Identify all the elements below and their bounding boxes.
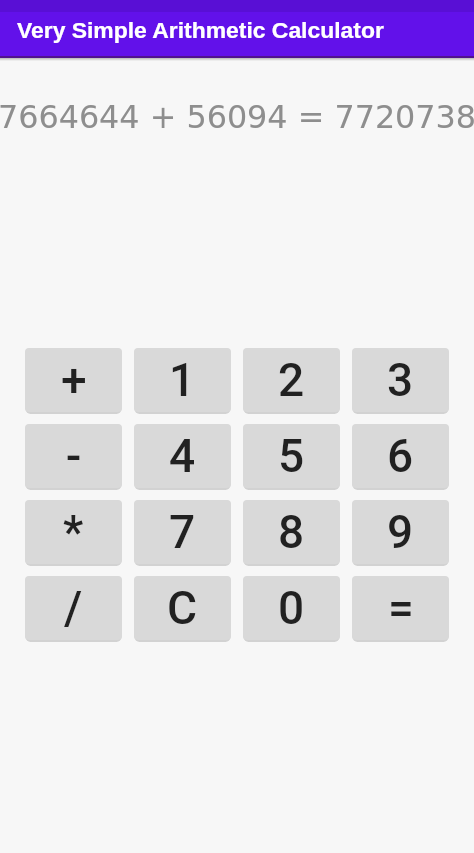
staticText: 3 bbox=[387, 353, 414, 407]
staticText: 4 bbox=[169, 429, 196, 483]
staticText: 2 bbox=[278, 353, 305, 407]
staticText: 5 bbox=[278, 429, 305, 483]
button[interactable]: = bbox=[352, 576, 449, 640]
button[interactable]: * bbox=[25, 500, 122, 564]
staticText: 6 bbox=[387, 429, 414, 483]
button[interactable]: 1 bbox=[134, 348, 231, 412]
button[interactable]: 7 bbox=[134, 500, 231, 564]
staticText: 1 bbox=[169, 353, 196, 407]
button[interactable]: 6 bbox=[352, 424, 449, 488]
button[interactable]: 4 bbox=[134, 424, 231, 488]
button[interactable]: 2 bbox=[243, 348, 340, 412]
button[interactable]: C bbox=[134, 576, 231, 640]
button[interactable]: / bbox=[25, 576, 122, 640]
staticText: + bbox=[61, 353, 87, 407]
button[interactable]: - bbox=[25, 424, 122, 488]
staticText: 7664644 + 56094 = 7720738 bbox=[0, 98, 474, 135]
button[interactable]: + bbox=[25, 348, 122, 412]
button[interactable]: 3 bbox=[352, 348, 449, 412]
staticText: 7 bbox=[169, 505, 196, 559]
staticText: 0 bbox=[278, 581, 305, 635]
button[interactable]: 9 bbox=[352, 500, 449, 564]
staticText: 9 bbox=[387, 505, 414, 559]
staticText: = bbox=[388, 581, 414, 635]
staticText: / bbox=[64, 581, 83, 635]
staticText: C bbox=[167, 581, 198, 635]
button[interactable]: 0 bbox=[243, 576, 340, 640]
staticText: - bbox=[66, 429, 82, 483]
button[interactable]: 5 bbox=[243, 424, 340, 488]
staticText: * bbox=[63, 505, 84, 559]
staticText: Very Simple Arithmetic Calculator bbox=[17, 17, 384, 43]
button[interactable]: 8 bbox=[243, 500, 340, 564]
staticText: 8 bbox=[278, 505, 305, 559]
